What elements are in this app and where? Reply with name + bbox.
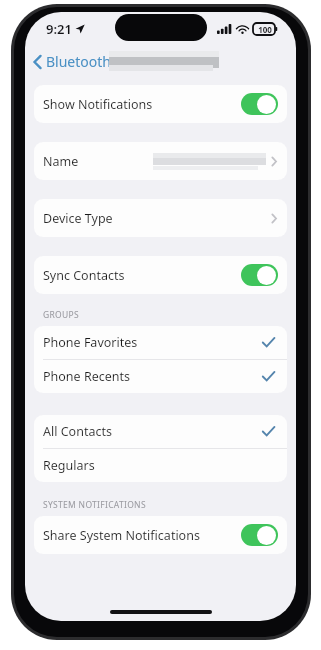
staticText: Sync Contacts [43, 267, 125, 284]
other: On [241, 264, 278, 286]
button[interactable]: Phone Favorites [34, 326, 287, 359]
button[interactable]: Show Notifications [34, 85, 287, 123]
staticText: Phone Favorites [43, 334, 138, 351]
staticText: Show Notifications [43, 96, 153, 113]
staticText: Bluetooth [46, 52, 111, 71]
staticText: GROUPS [43, 309, 79, 321]
button[interactable]: Phone Recents [34, 360, 287, 393]
button[interactable]: Name [34, 142, 287, 180]
button[interactable]: Bluetooth [25, 49, 117, 74]
button[interactable]: Sync Contacts [34, 256, 287, 294]
button[interactable]: Share System Notifications [34, 516, 287, 554]
staticText: 100 [258, 24, 272, 35]
button[interactable]: Regulars [34, 449, 287, 482]
staticText: Share System Notifications [43, 527, 200, 544]
button[interactable]: All Contacts [34, 415, 287, 448]
staticText: Name [43, 153, 79, 170]
other: On [241, 524, 278, 546]
other: On [241, 93, 278, 115]
staticText: SYSTEM NOTIFICATIONS [43, 499, 146, 511]
button[interactable]: Device Type [34, 199, 287, 237]
staticText: All Contacts [43, 423, 112, 440]
staticText: Phone Recents [43, 368, 130, 385]
staticText: 9:21 [46, 20, 72, 38]
staticText: Regulars [43, 457, 95, 474]
staticText: Device Type [43, 210, 113, 227]
